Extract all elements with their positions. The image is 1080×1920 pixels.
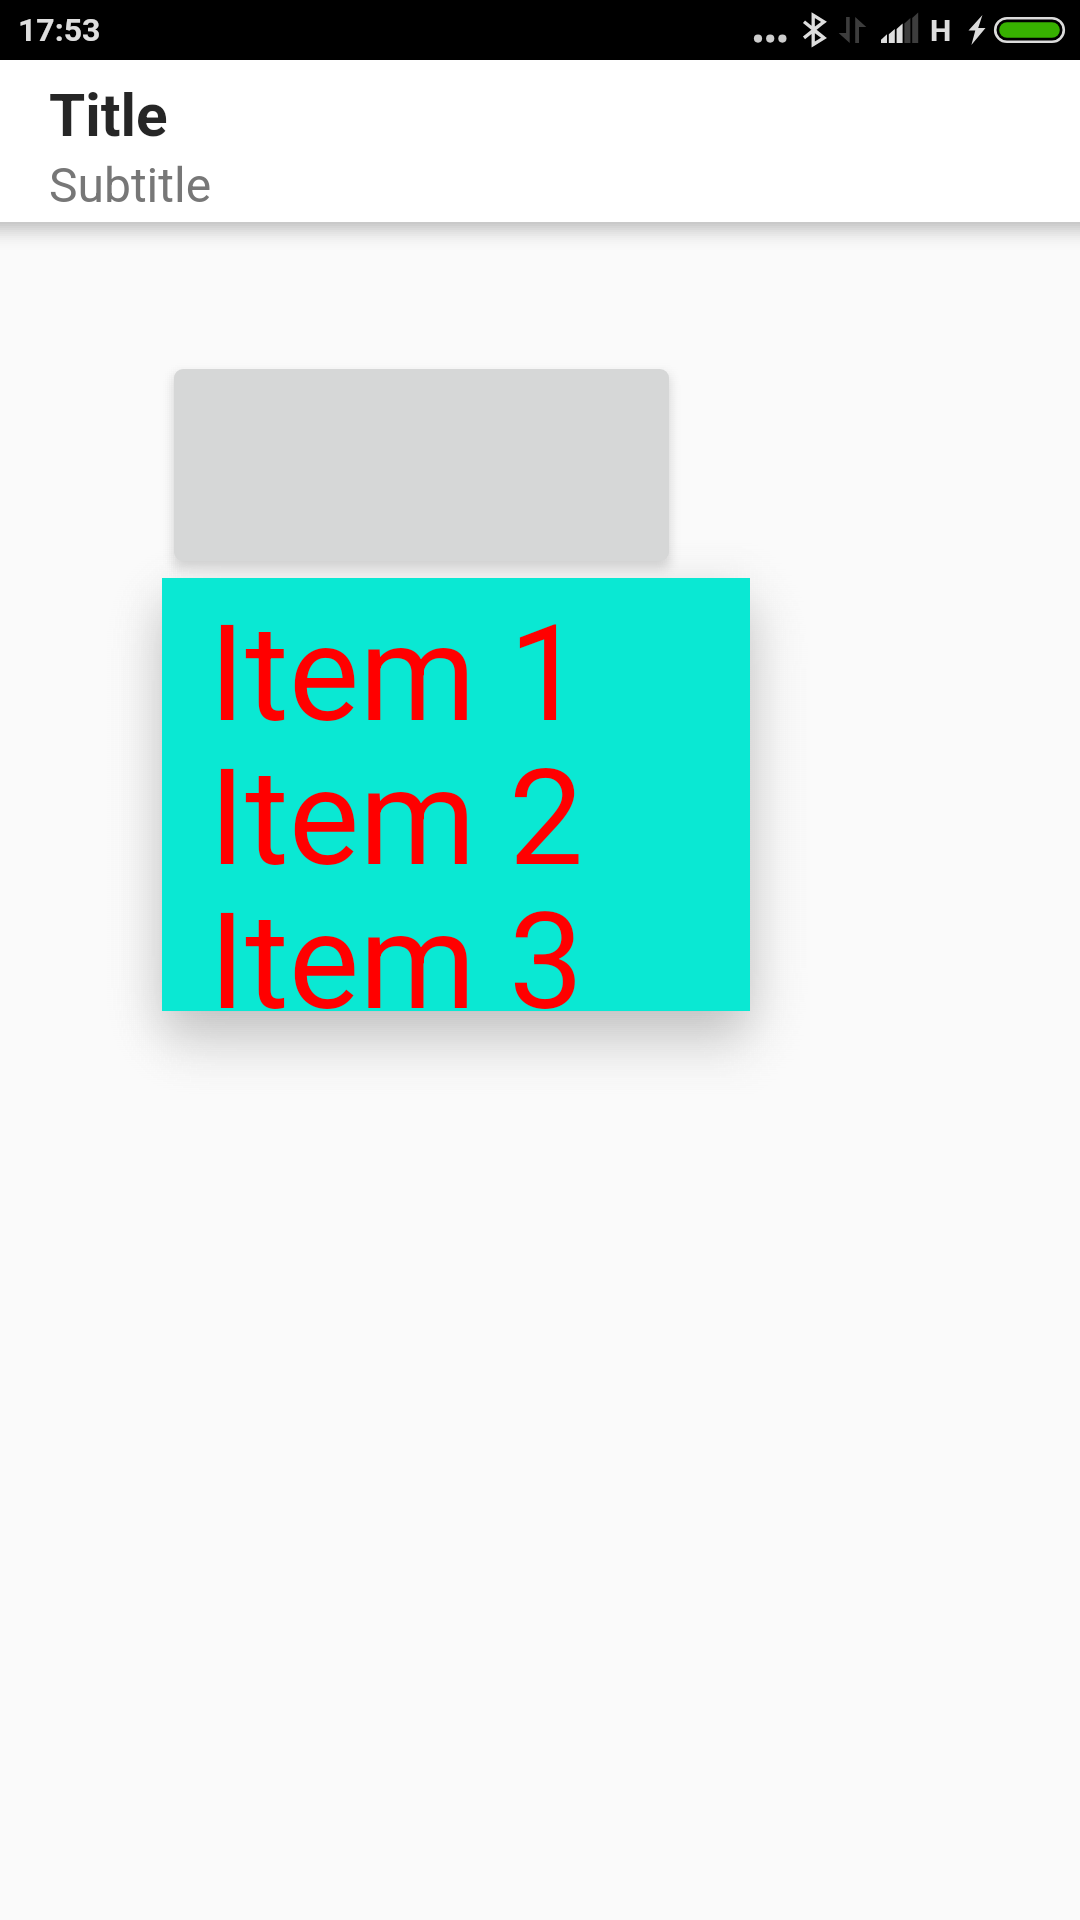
button[interactable]: Item 1	[162, 578, 750, 722]
staticText: Item 3	[209, 885, 584, 1029]
staticText: 17:53	[18, 11, 101, 49]
button[interactable]: Item 2	[162, 722, 750, 866]
staticText: Subtitle	[49, 157, 212, 213]
staticText: H	[930, 13, 952, 48]
staticText: Item 1	[209, 597, 584, 741]
staticText: Title	[49, 82, 168, 151]
staticText: Item 2	[209, 741, 584, 885]
button[interactable]: Item 3	[162, 866, 750, 1010]
